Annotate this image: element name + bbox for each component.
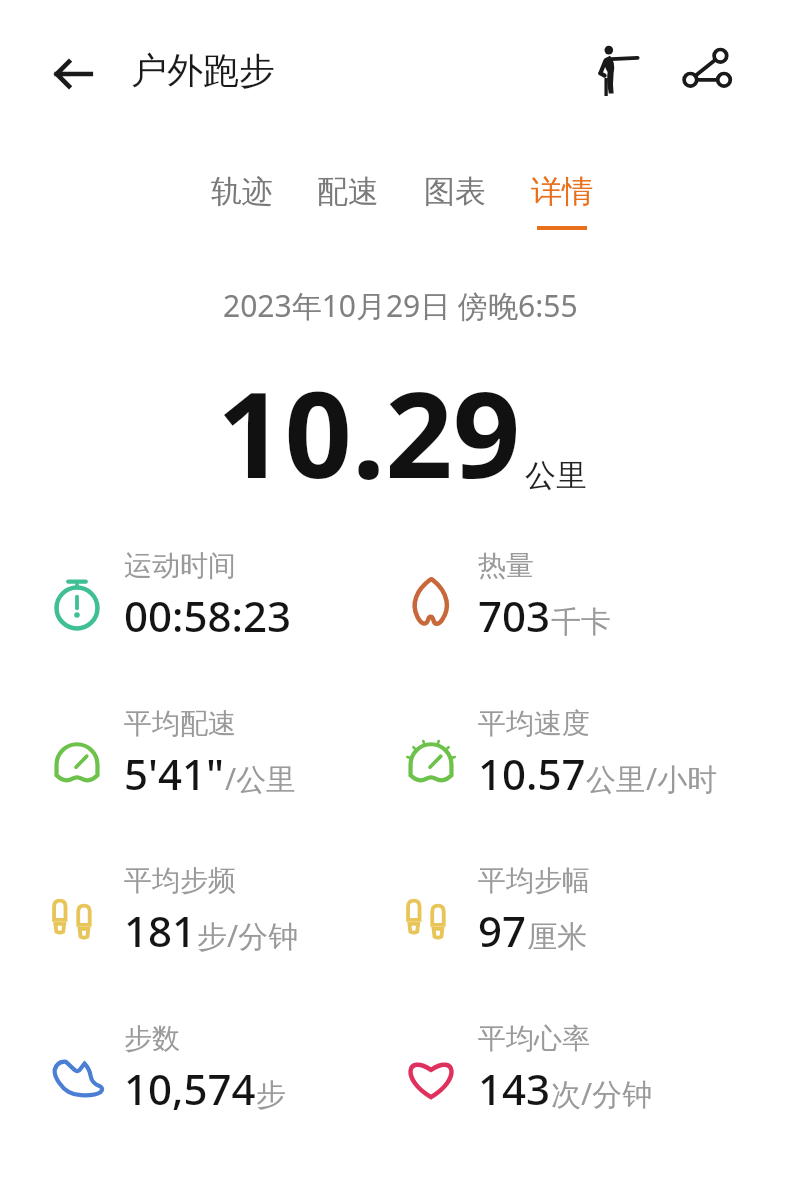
button[interactable]: 热量 xyxy=(400,548,750,668)
staticText: 千卡 xyxy=(551,603,611,641)
button[interactable]: 运动时间 xyxy=(46,548,396,668)
button[interactable]: 平均速度 xyxy=(400,706,750,826)
staticText: 2023年10月29日 傍晚6:55 xyxy=(223,285,578,326)
staticText: 公里 xyxy=(525,456,587,495)
staticText: 详情 xyxy=(531,172,593,211)
staticText: 轨迹 xyxy=(211,172,273,211)
staticText: 10,574 xyxy=(124,1060,256,1117)
staticText: 平均步频 xyxy=(124,863,236,898)
button[interactable]: Back xyxy=(46,46,102,102)
staticText: 步/分钟 xyxy=(197,915,299,956)
staticText: 次/分钟 xyxy=(551,1073,653,1114)
button[interactable]: 平均心率 xyxy=(400,1021,750,1141)
staticText: 00:58:23 xyxy=(124,587,291,644)
button[interactable]: 详情 xyxy=(524,172,600,234)
button[interactable]: 配速 xyxy=(310,172,386,234)
staticText: 97 xyxy=(478,902,527,959)
staticText: 步数 xyxy=(124,1021,180,1056)
staticText: 10.57 xyxy=(478,745,586,802)
button[interactable]: 平均步频 xyxy=(46,863,396,983)
button[interactable]: 步数 xyxy=(46,1021,396,1141)
staticText: 平均速度 xyxy=(478,706,590,741)
staticText: 热量 xyxy=(478,548,534,583)
button[interactable]: 平均配速 xyxy=(46,706,396,826)
button[interactable]: Activity type xyxy=(586,42,646,102)
staticText: 户外跑步 xyxy=(131,48,275,93)
staticText: 平均配速 xyxy=(124,706,236,741)
staticText: 181 xyxy=(124,902,197,959)
staticText: 厘米 xyxy=(527,918,587,956)
button[interactable]: 图表 xyxy=(417,172,493,234)
staticText: 运动时间 xyxy=(124,548,236,583)
staticText: /公里 xyxy=(225,758,297,799)
staticText: 平均步幅 xyxy=(478,863,590,898)
staticText: 143 xyxy=(478,1060,551,1117)
staticText: 平均心率 xyxy=(478,1021,590,1056)
staticText: 步 xyxy=(256,1076,286,1114)
staticText: 10.29 xyxy=(217,352,521,513)
staticText: 配速 xyxy=(317,172,379,211)
staticText: 图表 xyxy=(424,172,486,211)
staticText: 5'41" xyxy=(124,745,225,802)
staticText: 公里/小时 xyxy=(586,758,718,799)
button[interactable]: 轨迹 xyxy=(204,172,280,234)
staticText: 703 xyxy=(478,587,551,644)
button[interactable]: 平均步幅 xyxy=(400,863,750,983)
button[interactable]: Share xyxy=(676,42,736,102)
